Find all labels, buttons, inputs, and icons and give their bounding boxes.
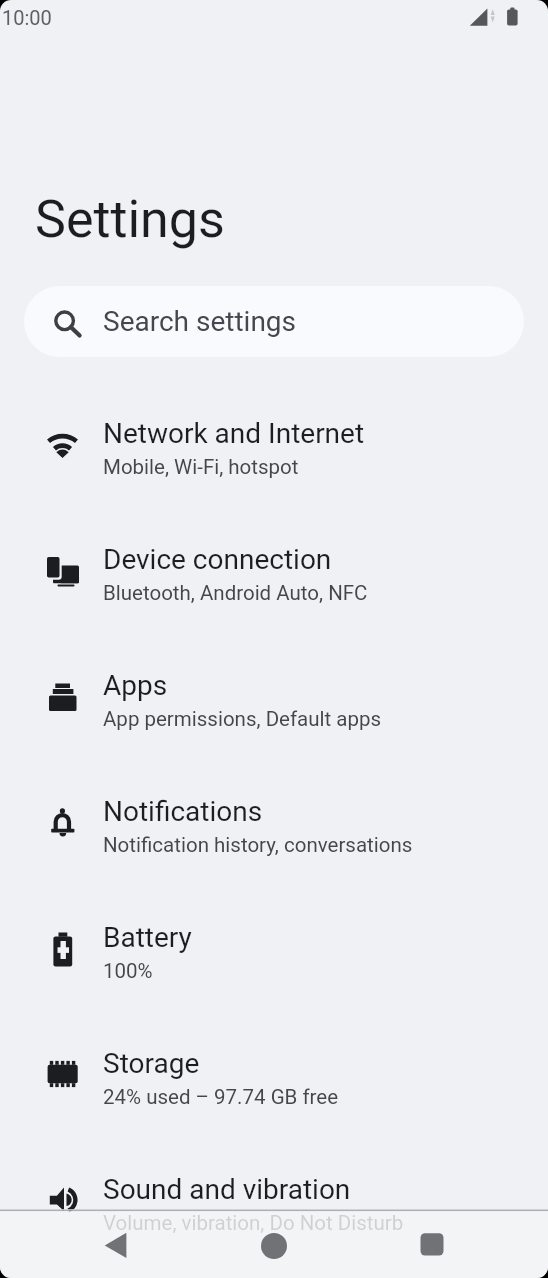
staticText: Notification history, conversations [103, 833, 413, 857]
staticText: Battery [103, 921, 192, 954]
staticText: Notifications [103, 795, 263, 828]
staticText: Sound and vibration [103, 1173, 351, 1206]
staticText: Bluetooth, Android Auto, NFC [103, 581, 368, 605]
button[interactable]: Notifications [0, 761, 548, 887]
staticText: Apps [103, 669, 168, 702]
button[interactable]: Search settings [24, 286, 524, 357]
staticText: Settings [35, 189, 225, 250]
button[interactable]: Storage [0, 1013, 548, 1139]
button[interactable]: Device connection [0, 509, 548, 635]
staticText: Volume, vibration, Do Not Disturb [103, 1211, 404, 1235]
button[interactable]: Network and Internet [0, 383, 548, 509]
button[interactable] [250, 1222, 298, 1270]
staticText: Storage [103, 1047, 200, 1080]
staticText: 100% [103, 959, 153, 983]
button[interactable]: Sound and vibration [0, 1139, 548, 1265]
staticText: Network and Internet [103, 417, 365, 450]
staticText: Device connection [103, 543, 332, 576]
button[interactable]: Apps [0, 635, 548, 761]
button[interactable]: Battery [0, 887, 548, 1013]
staticText: Search settings [103, 305, 297, 338]
button[interactable] [407, 1220, 455, 1268]
staticText: App permissions, Default apps [103, 707, 382, 731]
staticText: 24% used – 97.74 GB free [103, 1085, 339, 1109]
staticText: Mobile, Wi-Fi, hotspot [103, 455, 299, 479]
staticText: 10:00 [2, 6, 52, 29]
button[interactable] [91, 1225, 139, 1273]
